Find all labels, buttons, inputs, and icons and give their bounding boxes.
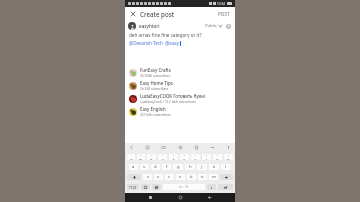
staticText: Easy Home Tips bbox=[140, 80, 173, 86]
button[interactable]: Public bbox=[204, 22, 223, 30]
button[interactable]: LudaEasyCOOK Готовить Кухні bbox=[125, 92, 235, 105]
staticText: b bbox=[190, 174, 193, 180]
button[interactable]: h bbox=[185, 164, 195, 170]
staticText: g bbox=[177, 164, 180, 170]
button[interactable]: l bbox=[221, 164, 231, 170]
button[interactable]: v bbox=[176, 174, 185, 180]
button[interactable]: 5 bbox=[169, 154, 178, 160]
button[interactable]: Shift bbox=[127, 174, 141, 180]
staticText: x bbox=[157, 174, 160, 180]
staticText: a bbox=[132, 164, 135, 170]
button[interactable]: m bbox=[209, 174, 218, 180]
staticText: 0 bbox=[228, 154, 230, 157]
staticText: easyhtori bbox=[139, 23, 160, 29]
button[interactable]: 3 bbox=[147, 154, 156, 160]
staticText: k bbox=[213, 164, 216, 170]
button[interactable]: Change language bbox=[152, 184, 161, 190]
staticText: 2h 34K subscribers bbox=[140, 87, 169, 91]
button[interactable]: d bbox=[151, 164, 160, 170]
staticText: d bbox=[154, 164, 157, 170]
button[interactable]: Easy English bbox=[125, 105, 235, 118]
staticText: Create post bbox=[140, 10, 175, 18]
button[interactable]: g bbox=[173, 164, 183, 170]
button[interactable]: b bbox=[187, 174, 196, 180]
button[interactable]: en - US bbox=[163, 184, 205, 190]
button[interactable]: Emoji bbox=[141, 184, 150, 190]
staticText: 4 bbox=[162, 154, 164, 157]
button[interactable]: 8 bbox=[202, 154, 211, 160]
button[interactable]: Back bbox=[206, 194, 213, 201]
staticText: m bbox=[212, 174, 216, 180]
button[interactable]: GIF bbox=[160, 144, 167, 151]
staticText: n bbox=[201, 174, 204, 180]
button[interactable]: 4 bbox=[158, 154, 167, 160]
button[interactable]: 2 bbox=[137, 154, 145, 160]
button[interactable]: 0 bbox=[224, 154, 233, 160]
staticText: 7 bbox=[195, 154, 197, 157]
staticText: LudaEasyCook • 13.2 lakh subscribers bbox=[140, 100, 197, 104]
staticText: 9 bbox=[217, 154, 219, 157]
button[interactable]: Close bbox=[128, 9, 137, 18]
staticText: Easy English bbox=[140, 106, 166, 112]
staticText: i bbox=[206, 157, 208, 160]
staticText: @Devansh Tech @easy bbox=[129, 40, 180, 46]
staticText: e bbox=[150, 157, 153, 160]
staticText: 2 bbox=[140, 154, 142, 157]
button[interactable]: Home bbox=[177, 194, 184, 201]
button[interactable]: POST bbox=[216, 10, 232, 18]
staticText: h bbox=[189, 164, 192, 170]
button[interactable]: Stickers bbox=[144, 144, 151, 151]
staticText: y bbox=[183, 157, 186, 160]
button[interactable]: k bbox=[209, 164, 219, 170]
button[interactable]: ?123 bbox=[127, 184, 139, 190]
staticText: u bbox=[194, 157, 197, 160]
staticText: 6 bbox=[184, 154, 186, 157]
button[interactable]: Voice input bbox=[225, 144, 232, 151]
button[interactable]: 7 bbox=[191, 154, 200, 160]
button[interactable]: More options bbox=[209, 144, 216, 151]
button[interactable]: 1 bbox=[127, 154, 135, 160]
staticText: 5 bbox=[173, 154, 175, 157]
staticText: l bbox=[225, 164, 227, 170]
button[interactable]: Add emotion bbox=[225, 23, 232, 30]
button[interactable]: 9 bbox=[213, 154, 222, 160]
staticText: POST bbox=[218, 11, 230, 17]
staticText: v bbox=[179, 174, 182, 180]
button[interactable]: a bbox=[129, 164, 138, 170]
staticText: ?123 bbox=[129, 185, 137, 190]
staticText: 227 lakh subscribers bbox=[140, 113, 171, 117]
staticText: s bbox=[143, 164, 146, 170]
button[interactable]: Back bbox=[128, 144, 135, 151]
staticText: FunEasy Crafts bbox=[140, 67, 171, 73]
staticText: en - US bbox=[179, 185, 189, 189]
button[interactable]: c bbox=[165, 174, 174, 180]
button[interactable]: Clipboard bbox=[193, 144, 200, 151]
button[interactable]: 6 bbox=[180, 154, 189, 160]
staticText: 1 bbox=[131, 154, 133, 157]
staticText: c bbox=[168, 174, 171, 180]
staticText: r bbox=[162, 157, 164, 160]
button[interactable]: s bbox=[140, 164, 149, 170]
button[interactable]: Recents bbox=[147, 194, 154, 201]
staticText: 2h 954K subscribers bbox=[140, 74, 171, 78]
button[interactable]: Backspace bbox=[220, 174, 233, 180]
staticText: t bbox=[173, 157, 175, 160]
staticText: z bbox=[147, 174, 149, 180]
button[interactable]: j bbox=[197, 164, 207, 170]
button[interactable]: Period bbox=[207, 184, 216, 190]
staticText: q bbox=[130, 157, 133, 160]
staticText: o bbox=[216, 157, 219, 160]
button[interactable]: Easy Home Tips bbox=[125, 79, 235, 92]
button[interactable]: Enter bbox=[218, 184, 233, 190]
button[interactable]: x bbox=[154, 174, 163, 180]
staticText: 8 bbox=[206, 154, 208, 157]
button[interactable]: n bbox=[198, 174, 207, 180]
button[interactable]: FunEasy Crafts bbox=[125, 66, 235, 79]
button[interactable]: f bbox=[162, 164, 171, 170]
staticText: 12:34 bbox=[217, 2, 226, 6]
staticText: LudaEasyCOOK Готовить Кухні bbox=[140, 93, 206, 99]
staticText: w bbox=[139, 157, 143, 160]
staticText: deh arnav fine fine category or it? bbox=[129, 32, 202, 38]
button[interactable]: Settings bbox=[177, 144, 184, 151]
button[interactable]: z bbox=[143, 174, 152, 180]
